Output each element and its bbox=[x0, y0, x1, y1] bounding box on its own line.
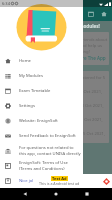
staticText: Settings bbox=[19, 103, 81, 109]
staticText: Nice job! bbox=[19, 178, 81, 184]
button[interactable]: Nice job! bbox=[0, 173, 83, 188]
staticText: Share The App bbox=[74, 55, 106, 61]
button[interactable]: Back bbox=[19, 188, 31, 200]
staticText: Exam Timetable bbox=[19, 88, 81, 94]
button[interactable]: Settings bbox=[0, 98, 83, 113]
staticText: FAC1502 (21 Oct 2021, Thursday) bbox=[59, 117, 109, 123]
staticText: Home bbox=[19, 58, 81, 64]
staticText: Send Feedback to EnsignSoft bbox=[19, 133, 81, 139]
staticText: Tell your friends about the app and help… bbox=[63, 37, 109, 55]
staticText: 6:34 bbox=[2, 1, 10, 6]
staticText: Test Ad bbox=[52, 176, 67, 181]
button[interactable]: Recent apps bbox=[81, 188, 93, 200]
staticText: Website: EnsignSoft bbox=[19, 118, 81, 124]
button[interactable]: Timetable bbox=[85, 8, 96, 19]
button[interactable]: Website: EnsignSoft bbox=[0, 113, 83, 128]
staticText: INF1505 (12 Oct 2021, Tuesday) bbox=[59, 89, 109, 95]
staticText: You are registered for 5 modules. bbox=[59, 75, 109, 81]
staticText: For questions not related to this app, c… bbox=[19, 145, 81, 156]
button[interactable]: Test Ad bbox=[33, 174, 112, 188]
button[interactable]: My Modules bbox=[0, 68, 83, 83]
button[interactable]: Exam Timetable bbox=[0, 83, 83, 98]
button[interactable]: Home bbox=[0, 53, 83, 68]
staticText: COS1512 (18 Oct 2021, Monday) bbox=[59, 103, 109, 109]
button[interactable]: Home bbox=[50, 188, 62, 200]
staticText: This is a Android test ad bbox=[39, 181, 80, 186]
button[interactable]: EnsignSoft: Terms of Use (Terms and Cond… bbox=[0, 158, 83, 173]
staticText: MNB1501 (25 Oct 2021, Monday) bbox=[59, 131, 109, 137]
button[interactable]: Home bbox=[98, 8, 109, 19]
button[interactable]: Send Feedback to EnsignSoft bbox=[0, 128, 83, 143]
staticText: My Modules bbox=[19, 73, 81, 79]
staticText: Welcome to your modules! bbox=[39, 23, 100, 29]
staticText: EnsignSoft: Terms of Use (Terms and Cond… bbox=[19, 160, 81, 171]
button[interactable]: For questions not related to this app, c… bbox=[0, 143, 83, 158]
